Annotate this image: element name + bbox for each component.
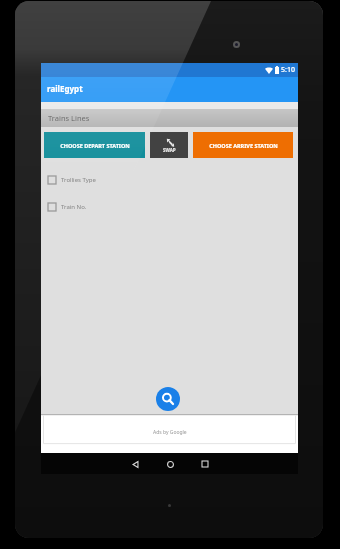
staticText: CHOOSE DEPART STATION [60, 142, 130, 149]
button[interactable]: CHOOSE DEPART STATION [44, 132, 145, 158]
button[interactable]: CHOOSE ARRIVE STATION [193, 132, 293, 158]
staticText: Ads by Google [153, 429, 187, 436]
staticText: CHOOSE ARRIVE STATION [209, 142, 278, 149]
staticText: railEgypt [47, 83, 83, 94]
button[interactable]: Train No. [48, 201, 298, 213]
button[interactable]: SWAP [150, 132, 188, 158]
staticText: SWAP [163, 147, 176, 153]
button[interactable]: Recents [199, 458, 211, 470]
button[interactable]: Home [164, 458, 176, 470]
staticText: Trollies Type [61, 176, 96, 184]
button[interactable]: Trains Lines [41, 109, 298, 127]
staticText: Train No. [61, 203, 87, 211]
button[interactable]: Back [129, 458, 141, 470]
button[interactable]: Search [156, 387, 180, 411]
staticText: 5:10 [281, 65, 295, 75]
button[interactable]: Trollies Type [48, 174, 298, 186]
staticText: Trains Lines [48, 113, 90, 123]
